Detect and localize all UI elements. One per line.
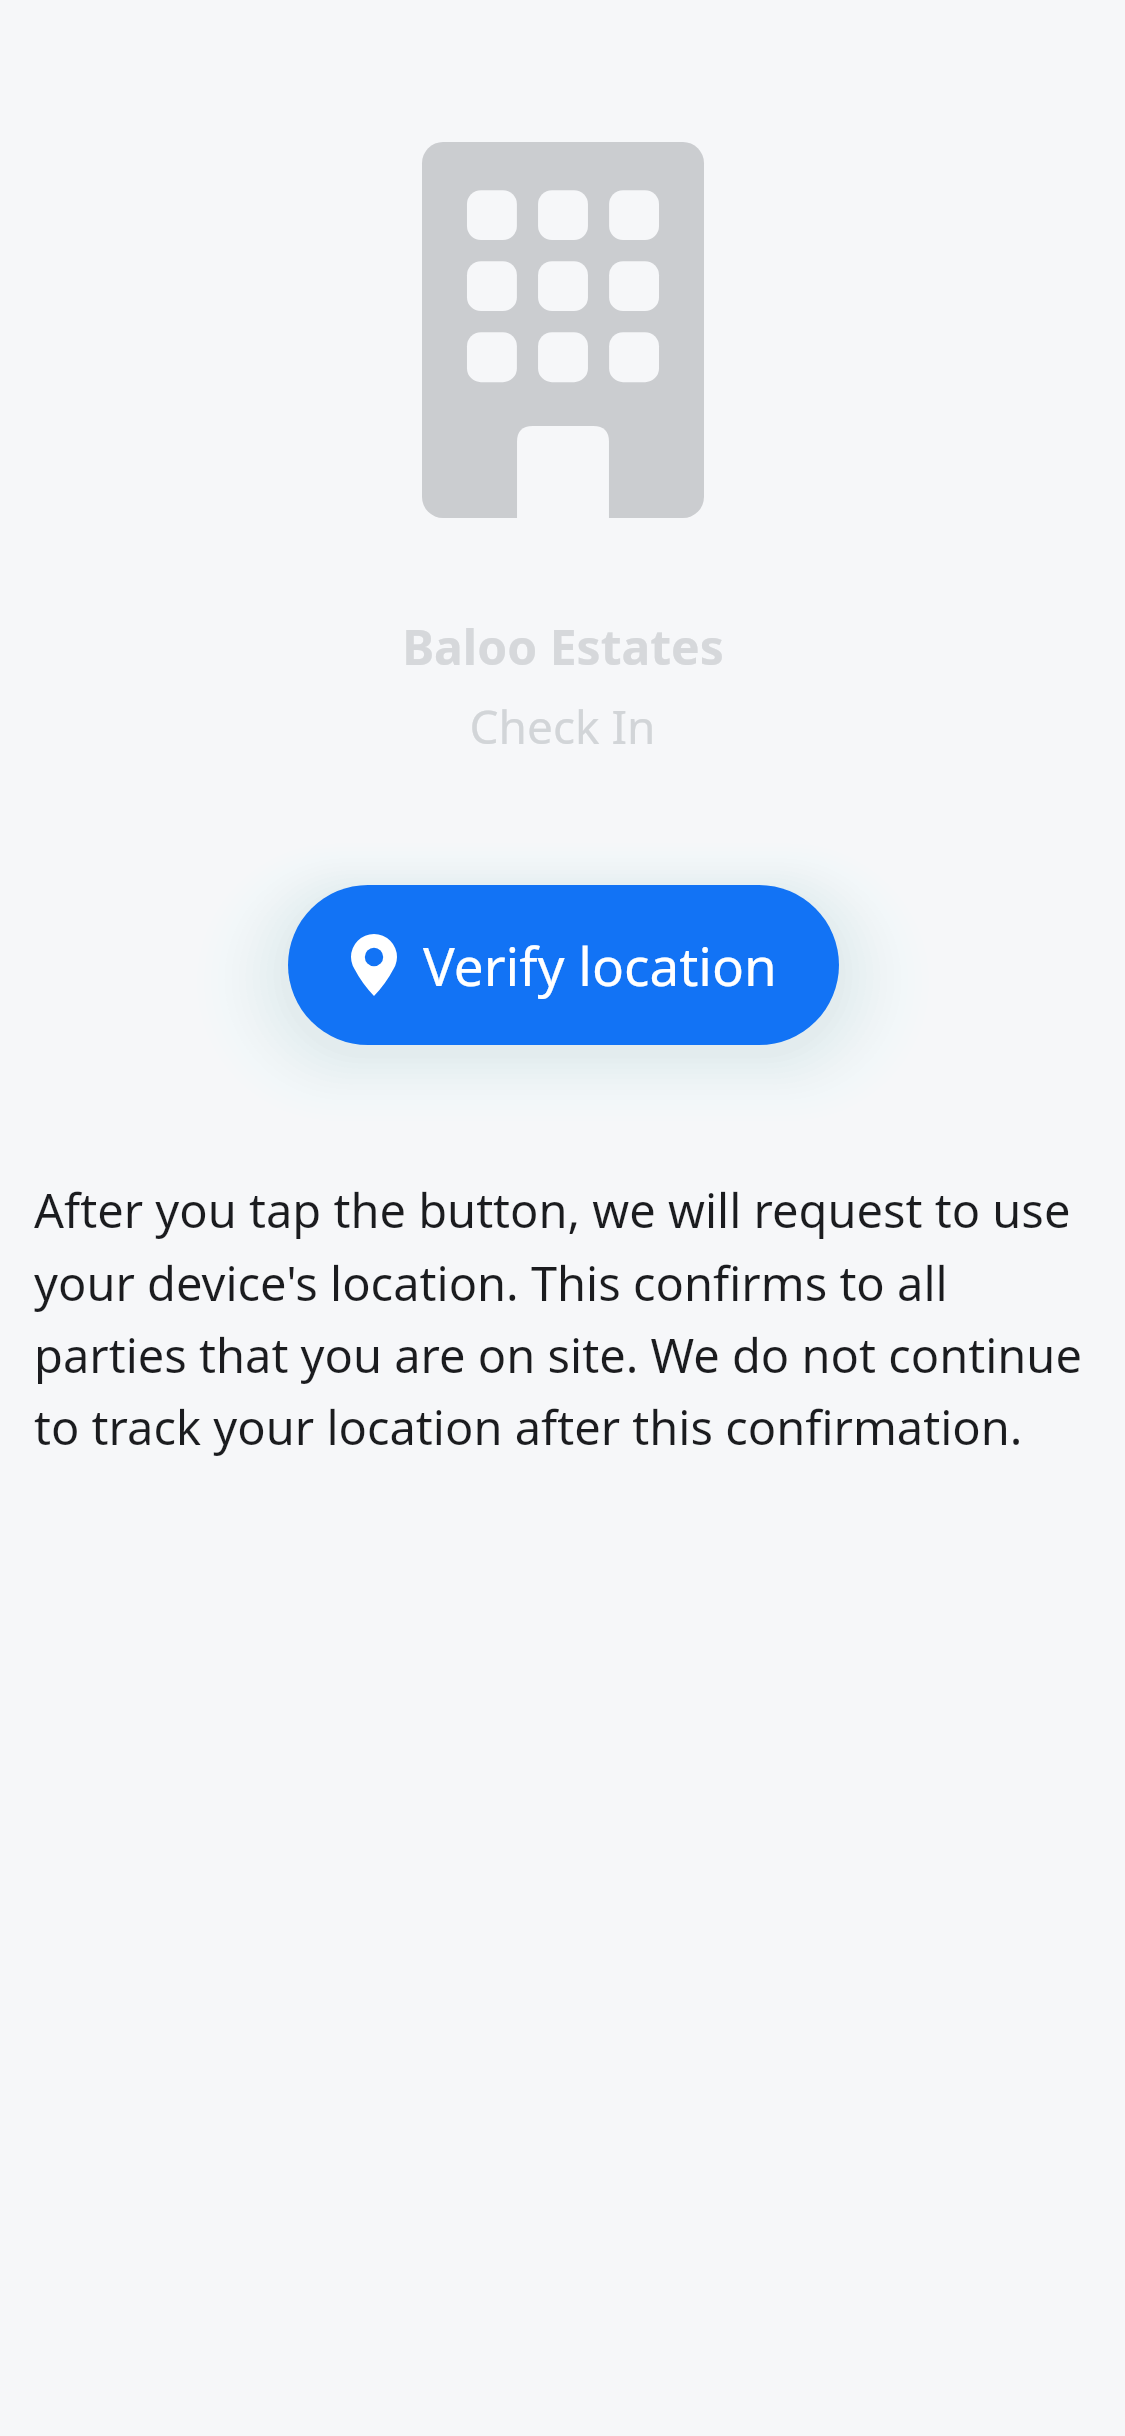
staticText: Verify location bbox=[423, 929, 777, 1001]
staticText: After you tap the button, we will reques… bbox=[34, 1178, 1091, 1458]
staticText: Baloo Estates bbox=[402, 614, 724, 679]
staticText: Check In bbox=[469, 695, 656, 758]
button[interactable]: Location pin bbox=[288, 885, 839, 1045]
other: Location pin bbox=[351, 934, 397, 996]
